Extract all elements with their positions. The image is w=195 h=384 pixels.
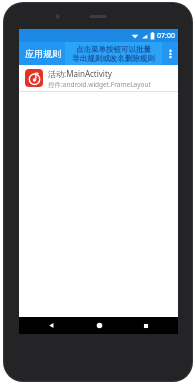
button[interactable]: Home bbox=[84, 317, 114, 334]
staticText: 07:00 bbox=[157, 31, 175, 41]
button[interactable]: Back bbox=[36, 317, 66, 334]
staticText: 导出规则或改名删除规则 bbox=[72, 54, 155, 63]
staticText: 活动:MainActivity bbox=[48, 68, 112, 79]
staticText: 点击菜单按钮可以批量 bbox=[76, 45, 151, 54]
button[interactable]: Recent apps bbox=[131, 317, 161, 334]
button[interactable]: More options bbox=[162, 42, 178, 65]
staticText: 控件:android.widget.FrameLayout bbox=[48, 80, 151, 89]
staticText: 应用规则 bbox=[25, 48, 61, 59]
button[interactable]: 点击菜单按钮可以批量 bbox=[65, 42, 162, 65]
button[interactable]: 活动:MainActivity bbox=[19, 65, 178, 91]
button[interactable]: 应用规则 bbox=[25, 48, 61, 59]
